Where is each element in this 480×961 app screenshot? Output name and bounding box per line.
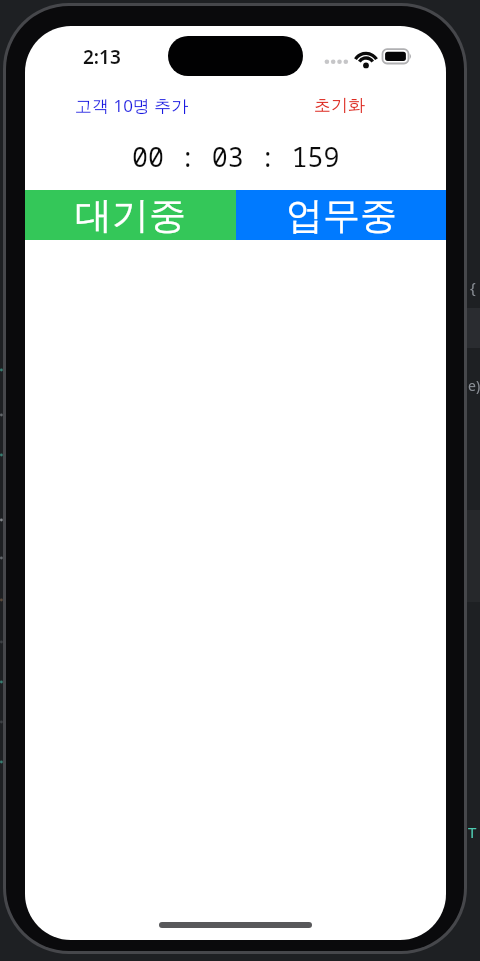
- button[interactable]: 고객 10명 추가: [70, 92, 184, 118]
- staticText: 대기중: [75, 192, 186, 239]
- staticText: 2:13: [83, 44, 121, 70]
- button[interactable]: 초기화: [304, 92, 374, 118]
- staticText: T: [468, 822, 477, 842]
- staticText: 업무중: [286, 192, 397, 239]
- staticText: {: [470, 277, 476, 297]
- button[interactable]: 대기중: [25, 190, 236, 240]
- staticText: 초기화: [314, 95, 365, 116]
- button[interactable]: 업무중: [236, 190, 446, 240]
- staticText: 고객 10명 추가: [75, 94, 189, 117]
- staticText: e): [468, 376, 480, 395]
- staticText: 00 : 03 : 159: [132, 139, 340, 175]
